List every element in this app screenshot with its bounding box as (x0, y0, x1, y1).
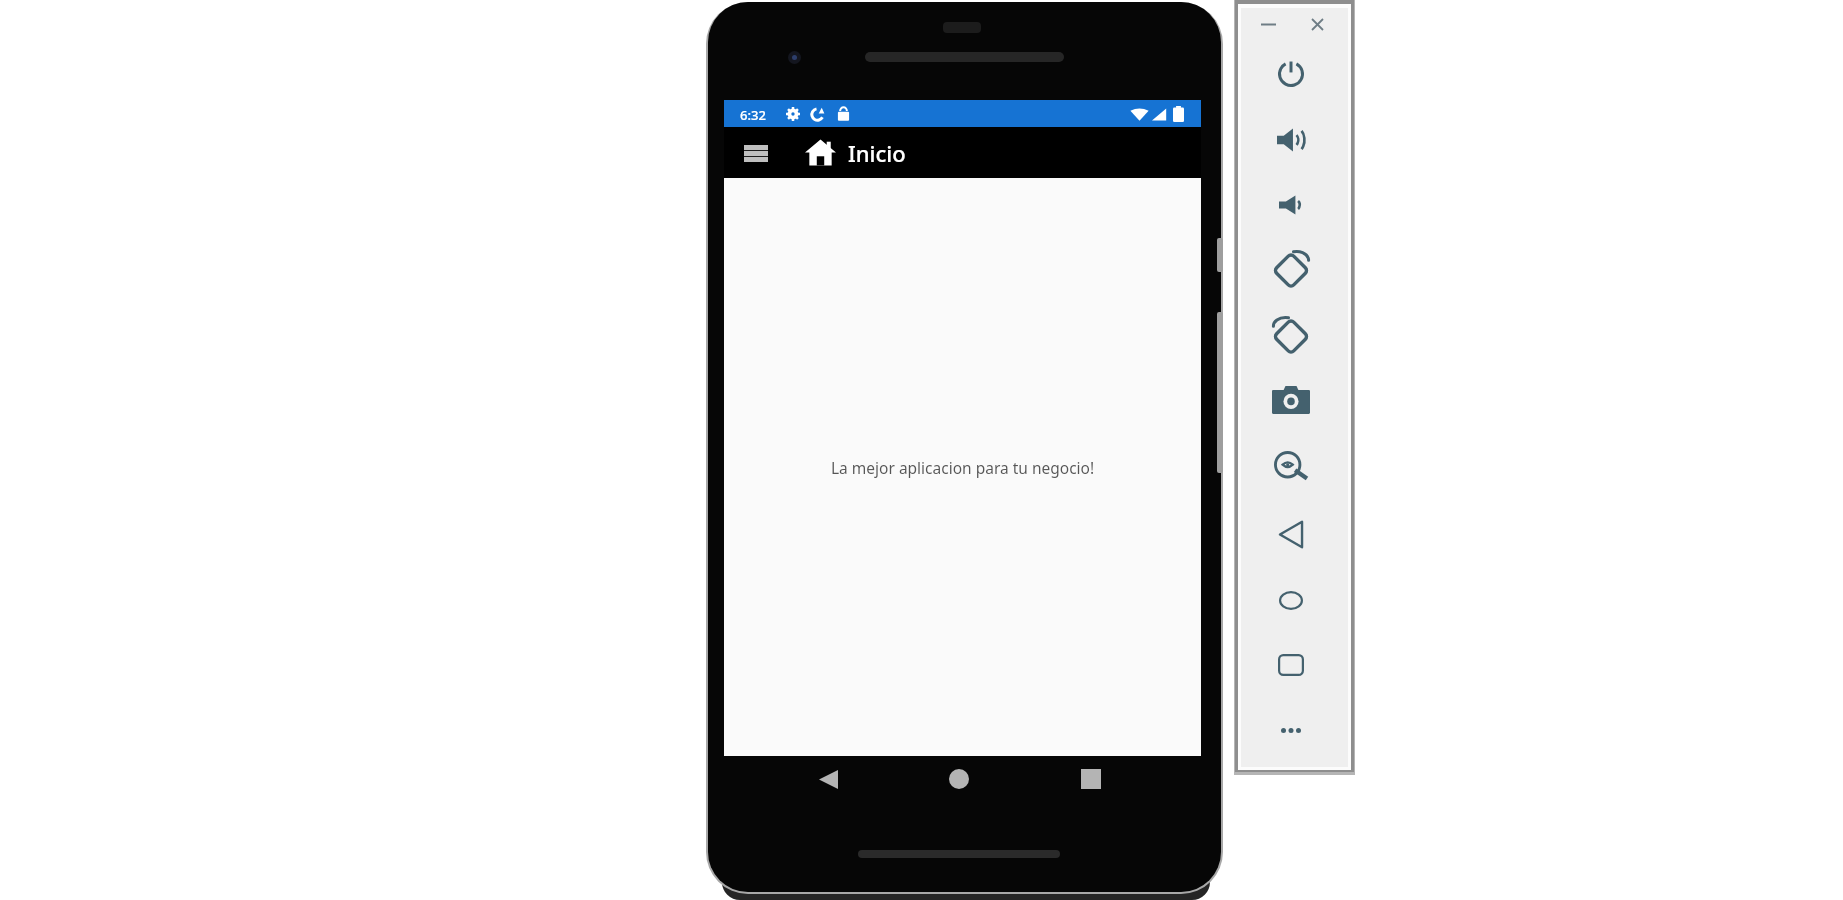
button[interactable]: More (1267, 706, 1315, 754)
button[interactable]: Close (1307, 14, 1327, 34)
button[interactable]: Volume up (1267, 116, 1315, 164)
button[interactable]: Volume down (1267, 181, 1315, 229)
button[interactable]: Menu (734, 131, 778, 175)
button[interactable]: Rotate right (1267, 311, 1315, 359)
button[interactable]: Screenshot (1267, 376, 1315, 424)
staticText: Inicio (848, 138, 906, 168)
button[interactable]: Power (1267, 50, 1315, 98)
button[interactable]: Home (939, 759, 979, 799)
button[interactable]: Zoom (1267, 442, 1315, 490)
button[interactable]: Home (1267, 576, 1315, 624)
button[interactable]: Rotate left (1267, 245, 1315, 293)
button[interactable]: Back (808, 759, 848, 799)
staticText: La mejor aplicacion para tu negocio! (831, 457, 1095, 478)
button[interactable]: Recents (1267, 641, 1315, 689)
button[interactable]: Recents (1071, 759, 1111, 799)
staticText: 6:32 (740, 106, 766, 124)
button[interactable]: Back (1267, 510, 1315, 558)
button[interactable]: Minimize (1258, 14, 1278, 34)
